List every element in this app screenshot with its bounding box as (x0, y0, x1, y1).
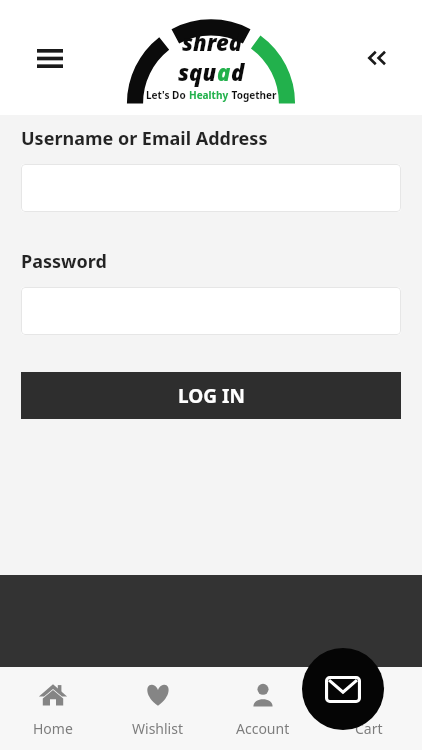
button[interactable]: Back (352, 36, 396, 80)
staticText: Wishlist (132, 719, 183, 738)
staticText: a (217, 57, 231, 87)
staticText: squ (178, 57, 217, 87)
staticText: Together (229, 88, 277, 102)
button[interactable]: Text field (21, 287, 401, 335)
staticText: Password (21, 249, 107, 274)
button[interactable]: LOG IN (21, 372, 401, 419)
staticText: shred (182, 27, 242, 57)
button[interactable]: Wishlist (105, 667, 210, 750)
button[interactable]: Cart (316, 667, 422, 750)
button[interactable]: Home (0, 667, 105, 750)
staticText: Cart (355, 719, 383, 738)
button[interactable]: Account (210, 667, 316, 750)
staticText: LOG IN (178, 383, 245, 409)
staticText: Healthy (189, 88, 229, 102)
button[interactable]: Text field (21, 164, 401, 212)
staticText: d (231, 57, 245, 87)
staticText: Username or Email Address (21, 126, 268, 151)
staticText: Home (33, 719, 73, 738)
staticText: Account (236, 719, 290, 738)
button[interactable]: Menu (28, 36, 72, 80)
staticText: Let's Do (146, 88, 189, 102)
button[interactable]: Messages (302, 648, 384, 730)
